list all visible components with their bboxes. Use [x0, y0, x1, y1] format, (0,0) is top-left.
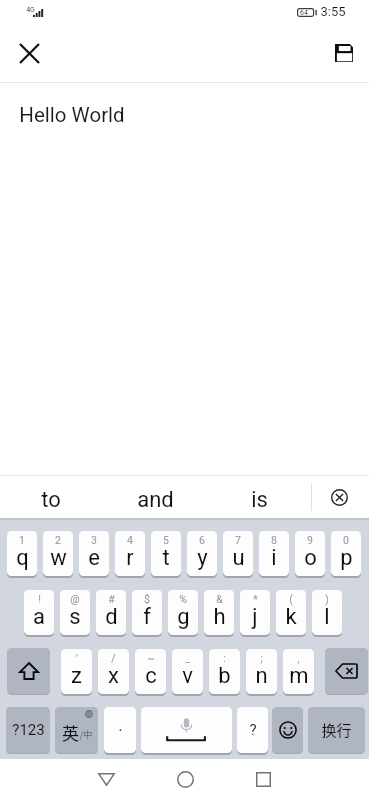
- button[interactable]: 5: [151, 531, 181, 576]
- staticText: l: [324, 604, 330, 630]
- staticText: &: [216, 593, 223, 605]
- staticText: g: [177, 604, 190, 630]
- staticText: (: [289, 593, 293, 605]
- staticText: is: [251, 487, 268, 513]
- button[interactable]: to: [11, 476, 91, 519]
- button[interactable]: @: [60, 590, 90, 635]
- staticText: b: [218, 663, 231, 689]
- staticText: 0: [343, 534, 349, 546]
- button[interactable]: _: [172, 649, 203, 694]
- button[interactable]: #: [96, 590, 126, 635]
- staticText: m: [289, 663, 309, 689]
- staticText: $: [144, 593, 150, 605]
- staticText: e: [88, 545, 100, 571]
- staticText: 3: [91, 534, 97, 546]
- button[interactable]: 7: [223, 531, 253, 576]
- staticText: to: [41, 487, 61, 513]
- button[interactable]: 2: [43, 531, 73, 576]
- staticText: r: [126, 545, 134, 571]
- staticText: y: [197, 545, 208, 571]
- button[interactable]: 4: [115, 531, 145, 576]
- staticText: ': [76, 652, 78, 664]
- other: Space: [141, 707, 232, 753]
- staticText: h: [213, 604, 226, 630]
- button[interactable]: ;: [246, 649, 277, 694]
- staticText: ;: [260, 652, 263, 664]
- button[interactable]: Space: [141, 707, 232, 753]
- button[interactable]: Recents: [240, 759, 286, 800]
- staticText: ): [325, 593, 329, 605]
- staticText: w: [50, 545, 67, 571]
- button[interactable]: Back: [83, 759, 129, 800]
- staticText: 5: [163, 534, 169, 546]
- button[interactable]: Close: [10, 34, 48, 72]
- other: Emoji: [279, 721, 297, 739]
- staticText: 4: [127, 534, 133, 546]
- button[interactable]: Clear suggestions: [318, 476, 360, 519]
- staticText: /中: [79, 727, 93, 741]
- button[interactable]: Backspace: [325, 648, 368, 694]
- button[interactable]: !: [24, 590, 54, 635]
- staticText: !: [38, 593, 41, 605]
- staticText: ·: [118, 720, 123, 740]
- button[interactable]: &: [204, 590, 234, 635]
- button[interactable]: 英: [55, 707, 98, 753]
- staticText: v: [182, 663, 193, 689]
- button[interactable]: ·: [104, 707, 136, 753]
- button[interactable]: Home: [162, 759, 208, 800]
- button[interactable]: Emoji: [272, 707, 303, 753]
- button[interactable]: :: [209, 649, 240, 694]
- staticText: 3:55: [320, 4, 346, 19]
- button[interactable]: ,: [283, 649, 314, 694]
- staticText: ?: [249, 721, 257, 739]
- staticText: ~: [147, 652, 155, 664]
- button[interactable]: 1: [7, 531, 37, 576]
- staticText: d: [105, 604, 118, 630]
- staticText: 8: [271, 534, 277, 546]
- staticText: s: [69, 604, 81, 630]
- staticText: c: [145, 663, 157, 689]
- staticText: n: [255, 663, 268, 689]
- button[interactable]: ): [312, 590, 342, 635]
- staticText: 1: [19, 534, 25, 546]
- staticText: and: [137, 487, 174, 513]
- staticText: @: [70, 593, 80, 605]
- staticText: *: [253, 593, 258, 605]
- staticText: 2: [55, 534, 61, 546]
- button[interactable]: (: [276, 590, 306, 635]
- staticText: %: [179, 593, 187, 605]
- button[interactable]: ~: [135, 649, 166, 694]
- button[interactable]: 9: [295, 531, 325, 576]
- button[interactable]: is: [219, 476, 299, 519]
- button[interactable]: /: [98, 649, 129, 694]
- button[interactable]: $: [132, 590, 162, 635]
- staticText: 4G: [26, 6, 35, 14]
- button[interactable]: 3: [79, 531, 109, 576]
- staticText: 6: [199, 534, 205, 546]
- staticText: k: [285, 604, 297, 630]
- staticText: f: [143, 604, 151, 630]
- button[interactable]: 换行: [308, 707, 365, 753]
- button[interactable]: and: [115, 476, 195, 519]
- button[interactable]: Save: [325, 34, 363, 72]
- staticText: Hello World: [19, 103, 125, 127]
- staticText: ?123: [12, 721, 45, 739]
- staticText: p: [340, 545, 353, 571]
- staticText: a: [33, 604, 45, 630]
- button[interactable]: ': [61, 649, 92, 694]
- staticText: 64: [300, 9, 308, 17]
- staticText: /: [111, 652, 116, 664]
- staticText: t: [162, 545, 170, 571]
- button[interactable]: Shift: [7, 648, 50, 694]
- button[interactable]: 8: [259, 531, 289, 576]
- button[interactable]: 6: [187, 531, 217, 576]
- staticText: :: [223, 652, 226, 664]
- button[interactable]: 0: [331, 531, 361, 576]
- button[interactable]: %: [168, 590, 198, 635]
- button[interactable]: ?123: [6, 707, 50, 753]
- staticText: u: [232, 545, 245, 571]
- button[interactable]: *: [240, 590, 270, 635]
- staticText: i: [271, 545, 277, 571]
- staticText: 英: [62, 720, 79, 745]
- button[interactable]: ?: [237, 707, 268, 753]
